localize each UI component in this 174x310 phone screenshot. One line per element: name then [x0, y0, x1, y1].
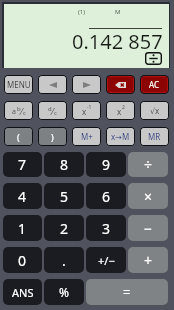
- button[interactable]: +/−: [86, 247, 126, 273]
- staticText: %: [59, 284, 69, 300]
- button[interactable]: (: [5, 128, 32, 145]
- staticText: ⁄: [21, 105, 23, 117]
- staticText: ): [51, 131, 54, 143]
- button[interactable]: 2: [44, 215, 84, 241]
- button[interactable]: MR: [141, 128, 168, 145]
- button[interactable]: Decimal fraction: [39, 102, 66, 119]
- staticText: 2: [60, 219, 69, 238]
- staticText: 1: [18, 219, 27, 238]
- staticText: (1): [78, 8, 86, 16]
- staticText: 3: [102, 219, 111, 238]
- staticText: +/−: [98, 253, 115, 268]
- staticText: x→M: [111, 131, 130, 142]
- staticText: M+: [81, 131, 93, 142]
- button[interactable]: 3: [86, 215, 126, 241]
- staticText: 0: [18, 251, 27, 270]
- button[interactable]: 9: [86, 152, 126, 177]
- staticText: x: [117, 106, 122, 117]
- button[interactable]: √x: [141, 102, 168, 119]
- button[interactable]: 7: [3, 152, 42, 177]
- staticText: −: [144, 219, 153, 238]
- staticText: ANS: [12, 285, 34, 300]
- staticText: 6: [102, 187, 111, 206]
- button[interactable]: 6: [86, 183, 126, 209]
- button[interactable]: Backspace: [108, 77, 133, 92]
- staticText: a: [12, 107, 16, 117]
- staticText: =: [123, 283, 131, 301]
- button[interactable]: Square: [107, 102, 134, 119]
- button[interactable]: ÷: [128, 152, 168, 177]
- staticText: +: [144, 251, 153, 270]
- button[interactable]: M+: [73, 128, 100, 145]
- staticText: 2: [122, 104, 125, 111]
- button[interactable]: Move right: [73, 76, 100, 93]
- button[interactable]: −: [128, 215, 168, 241]
- staticText: M: [115, 8, 121, 16]
- button[interactable]: x→M: [107, 128, 134, 145]
- button[interactable]: AC: [142, 77, 167, 92]
- staticText: 5: [60, 187, 69, 206]
- staticText: 8: [60, 155, 69, 174]
- staticText: .: [62, 251, 66, 270]
- staticText: √x: [150, 105, 160, 116]
- staticText: 0.142 857: [72, 28, 163, 55]
- button[interactable]: 8: [44, 152, 84, 177]
- button[interactable]: =: [86, 279, 168, 305]
- staticText: (: [17, 131, 20, 143]
- button[interactable]: ×: [128, 183, 168, 209]
- staticText: MR: [148, 131, 161, 142]
- staticText: -1: [87, 104, 92, 111]
- button[interactable]: 1: [3, 215, 42, 241]
- button[interactable]: 4: [3, 183, 42, 209]
- staticText: c: [23, 109, 26, 117]
- button[interactable]: .: [44, 247, 84, 273]
- button[interactable]: ANS: [3, 279, 42, 305]
- button[interactable]: 5: [44, 183, 84, 209]
- staticText: ×: [144, 187, 153, 206]
- button[interactable]: ): [39, 128, 66, 145]
- button[interactable]: %: [44, 279, 84, 305]
- button[interactable]: +: [128, 247, 168, 273]
- button[interactable]: Fraction: [5, 102, 32, 119]
- staticText: 4: [18, 187, 27, 206]
- button[interactable]: MENU: [5, 76, 32, 93]
- staticText: ⁄: [52, 105, 54, 117]
- staticText: x: [82, 106, 87, 117]
- staticText: ÷: [144, 155, 153, 174]
- staticText: AC: [149, 79, 160, 90]
- staticText: d: [48, 105, 52, 113]
- staticText: MENU: [7, 79, 31, 90]
- button[interactable]: Move left: [39, 76, 66, 93]
- button[interactable]: 0: [3, 247, 42, 273]
- staticText: b: [17, 105, 21, 113]
- staticText: c: [54, 109, 57, 117]
- staticText: 7: [18, 155, 27, 174]
- staticText: 9: [102, 155, 111, 174]
- button[interactable]: Reciprocal: [73, 102, 100, 119]
